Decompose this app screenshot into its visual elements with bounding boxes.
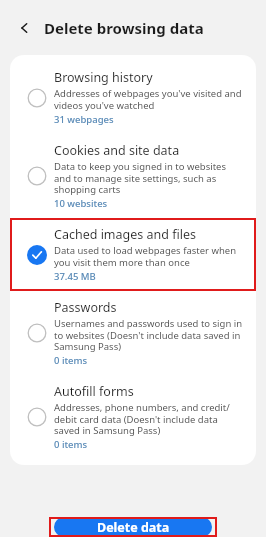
staticText: Usernames and passwords used to sign in … [54, 317, 244, 353]
button[interactable]: Passwords [10, 291, 256, 375]
staticText: Delete browsing data [44, 18, 204, 38]
staticText: 0 items [54, 438, 88, 451]
staticText: Cookies and site data [54, 142, 180, 159]
staticText: Addresses, phone numbers, and credit/deb… [54, 401, 244, 437]
staticText: Autofill forms [54, 383, 134, 400]
staticText: Delete data [97, 519, 170, 536]
staticText: 0 items [54, 354, 88, 367]
button[interactable]: Delete data [54, 517, 212, 537]
staticText: Addresses of webpages you've visited and… [54, 87, 244, 112]
button[interactable]: Browsing history [10, 61, 256, 134]
button[interactable]: Autofill forms [10, 375, 256, 459]
button[interactable]: Back [14, 17, 36, 39]
staticText: Data to keep you signed in to websites a… [54, 160, 244, 196]
staticText: 10 websites [54, 197, 108, 210]
button[interactable]: Cached images and files [10, 218, 256, 291]
staticText: Data used to load webpages faster when y… [54, 244, 244, 269]
staticText: 37.45 MB [54, 270, 96, 283]
staticText: Browsing history [54, 69, 153, 86]
staticText: Cached images and files [54, 226, 196, 243]
staticText: Passwords [54, 299, 117, 316]
button[interactable]: Cookies and site data [10, 134, 256, 218]
staticText: 31 webpages [54, 113, 114, 126]
